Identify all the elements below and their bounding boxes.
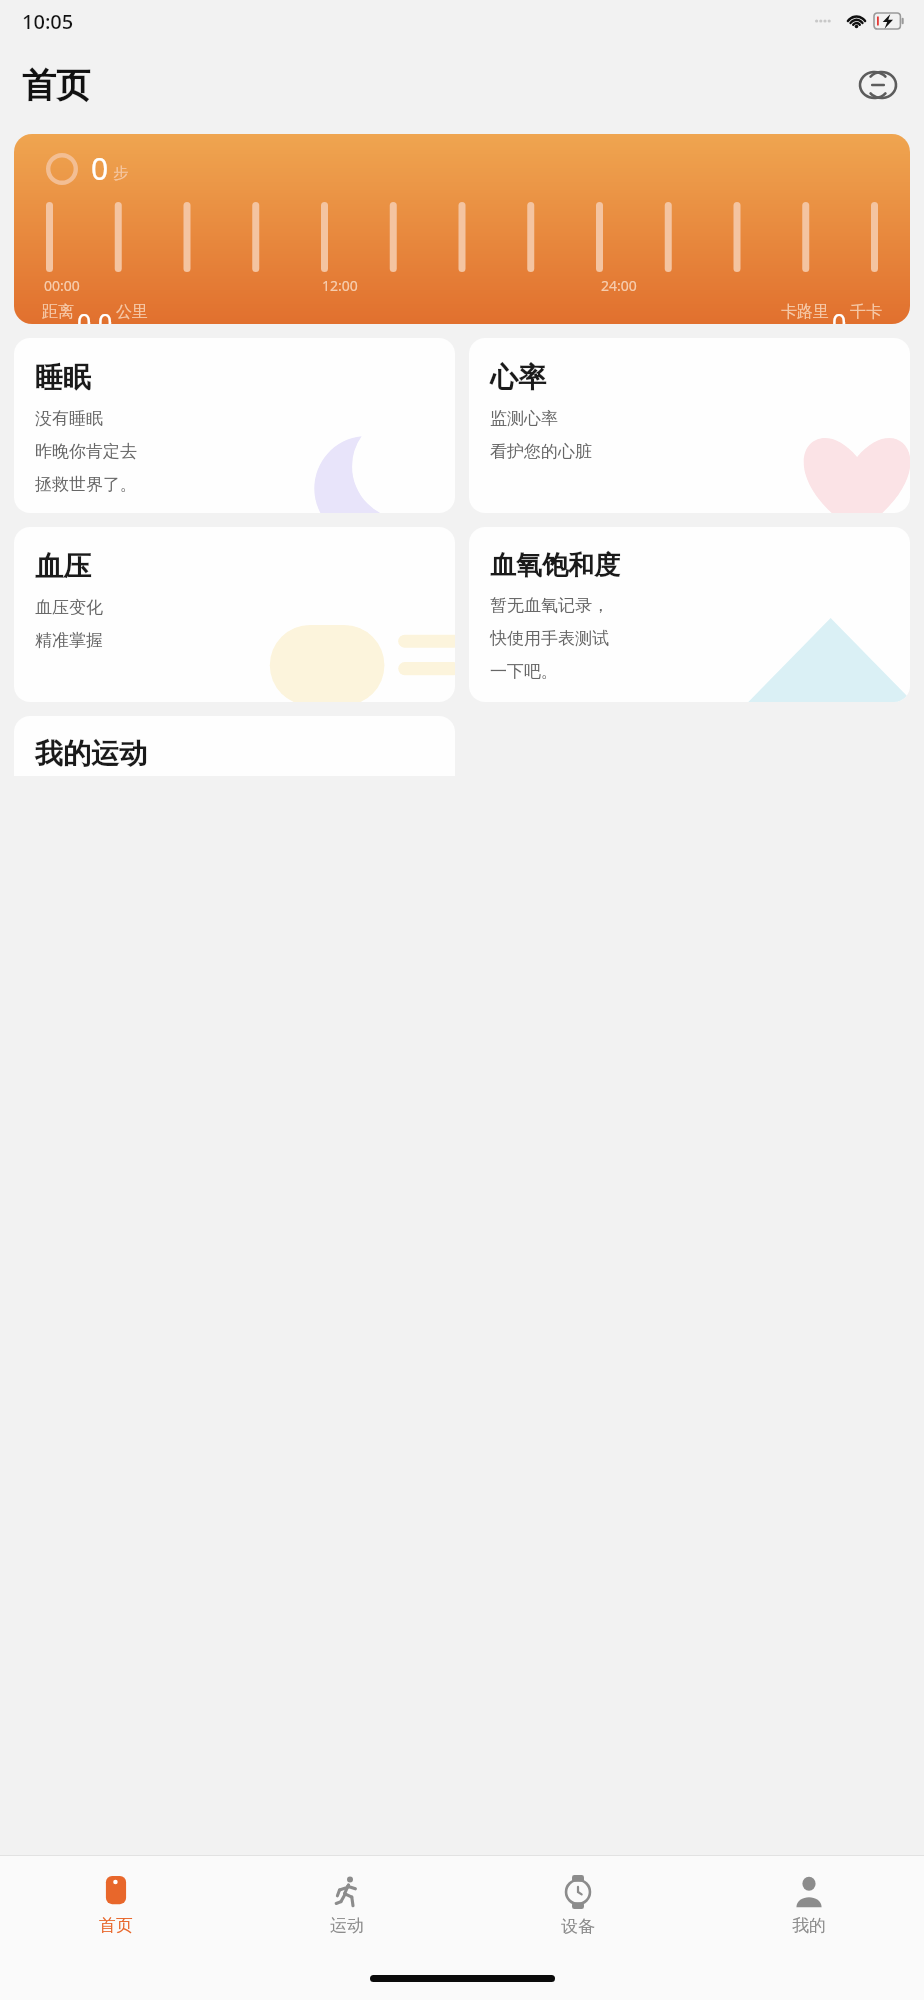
staticText: 步 (113, 164, 128, 183)
staticText: 设备 (561, 1916, 595, 1937)
staticText: 监测心率 (490, 408, 558, 429)
button[interactable]: 心率 (469, 338, 910, 513)
staticText: 0 (91, 148, 109, 189)
staticText: 没有睡眠 (35, 408, 103, 429)
staticText: 心率 (490, 360, 546, 395)
staticText: 运动 (330, 1915, 364, 1936)
staticText: 血压 (35, 549, 91, 584)
button[interactable]: 设备 (462, 1869, 693, 1943)
button[interactable]: Link device (854, 61, 902, 109)
staticText: 精准掌握 (35, 630, 103, 651)
button[interactable]: 血氧饱和度 (469, 527, 910, 702)
button[interactable]: 我的 (693, 1870, 924, 1942)
staticText: 卡路里 (781, 302, 829, 321)
staticText: 一下吧。 (490, 661, 558, 682)
staticText: 首页 (99, 1915, 133, 1936)
staticText: 我的 (792, 1915, 826, 1936)
button[interactable]: 睡眠 (14, 338, 455, 513)
staticText: 暂无血氧记录， (490, 595, 609, 616)
button[interactable]: 血压 (14, 527, 455, 702)
staticText: 距离 (42, 302, 74, 321)
staticText: 血氧饱和度 (490, 549, 620, 582)
button[interactable]: 运动 (231, 1870, 462, 1942)
staticText: 睡眠 (35, 360, 91, 395)
staticText: 血压变化 (35, 597, 103, 618)
button[interactable]: 0 (14, 134, 910, 324)
staticText: 12:00 (322, 276, 601, 295)
staticText: 千卡 (850, 302, 882, 321)
staticText: 24:00 (601, 276, 880, 295)
staticText: 首页 (22, 64, 90, 107)
button[interactable]: 首页 (0, 1870, 231, 1942)
staticText: 0 (832, 305, 847, 324)
staticText: 看护您的心脏 (490, 441, 592, 462)
staticText: 快使用手表测试 (490, 628, 609, 649)
staticText: 00:00 (44, 276, 322, 295)
staticText: 0.0 (77, 305, 113, 324)
staticText: 10:05 (22, 8, 74, 35)
staticText: 昨晚你肯定去 (35, 441, 137, 462)
staticText: 公里 (116, 302, 148, 321)
button[interactable]: 我的运动 (14, 716, 455, 776)
staticText: 我的运动 (35, 736, 147, 771)
staticText: 拯救世界了。 (35, 474, 137, 495)
